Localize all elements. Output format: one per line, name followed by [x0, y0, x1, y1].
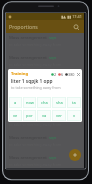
staticText: Mass arrangement — [9, 115, 47, 121]
button[interactable]: Mass arrangement — [6, 73, 84, 93]
button[interactable]: Mass arrangement — [6, 53, 84, 73]
staticText: sqn — [49, 95, 57, 101]
staticText: sqn — [49, 135, 57, 141]
button[interactable]: va — [37, 110, 51, 121]
staticText: sqn — [49, 75, 57, 81]
staticText: 6 — [61, 72, 64, 77]
staticText: sqn — [49, 35, 57, 41]
staticText: to take something away from — [9, 102, 62, 107]
staticText: va — [42, 113, 47, 118]
staticText: ver — [56, 113, 62, 118]
staticText: 2 — [54, 72, 57, 77]
staticText: liter 1 sqpjk 1 opp — [11, 78, 53, 85]
button[interactable]: Close — [76, 72, 81, 77]
staticText: Mass arrangement — [9, 55, 47, 61]
staticText: Training — [11, 71, 29, 77]
staticText: to take something away from — [9, 82, 62, 87]
staticText: Mass arrangement — [9, 75, 47, 81]
button[interactable]: Mass arrangement — [6, 113, 84, 133]
staticText: Mass arrangement — [9, 95, 47, 101]
staticText: now — [26, 100, 34, 105]
staticText: to take something away from — [11, 85, 61, 90]
button[interactable]: sha — [52, 97, 66, 108]
staticText: Proportions — [9, 23, 38, 30]
staticText: ve — [13, 113, 18, 118]
staticText: ta — [72, 100, 76, 105]
staticText: Mass arrangement — [9, 135, 47, 141]
button[interactable]: v — [67, 110, 81, 121]
button[interactable]: Mass arrangement — [6, 153, 84, 168]
button[interactable]: a — [9, 97, 22, 108]
button[interactable]: ver — [52, 110, 66, 121]
staticText: Mass arrangement — [9, 35, 47, 41]
staticText: v — [73, 113, 76, 118]
button[interactable]: Search — [71, 22, 81, 32]
staticText: por — [26, 113, 33, 118]
staticText: a — [14, 100, 17, 105]
button[interactable]: ta — [67, 97, 81, 108]
button[interactable]: Mass arrangement — [6, 93, 84, 113]
staticText: sqn — [49, 115, 57, 121]
button[interactable]: Mass arrangement — [6, 133, 84, 153]
button[interactable]: cha — [37, 97, 51, 108]
staticText: sha — [56, 100, 63, 105]
button[interactable]: ve — [9, 110, 22, 121]
button[interactable]: por — [23, 110, 36, 121]
staticText: 380 — [68, 72, 75, 77]
button[interactable]: now — [23, 97, 36, 108]
staticText: sqn — [49, 155, 57, 161]
staticText: sqn — [49, 55, 57, 61]
button[interactable]: Add — [69, 149, 81, 161]
staticText: cha — [41, 100, 48, 105]
staticText: Mass arrangement — [9, 155, 47, 161]
staticText: ▮▲ ▮▮ 17:41 — [61, 14, 82, 19]
